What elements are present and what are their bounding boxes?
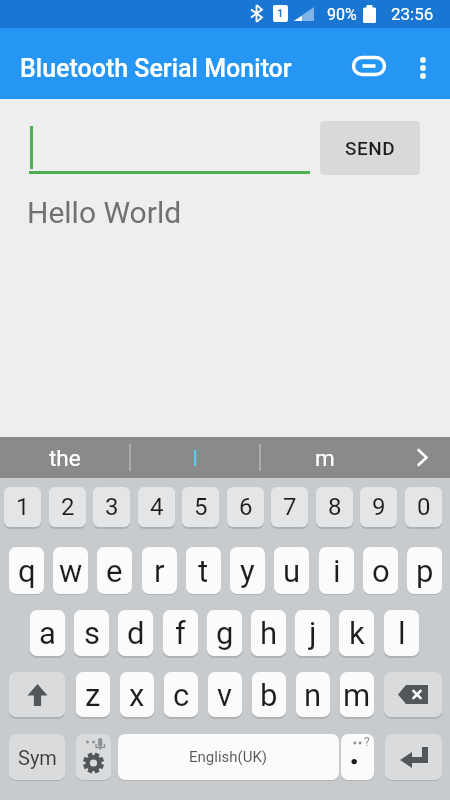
staticText: p: [416, 553, 434, 589]
staticText: English(UK): [189, 748, 268, 766]
staticText: ?: [364, 735, 370, 749]
staticText: Bluetooth Serial Monitor: [20, 54, 292, 83]
button[interactable]: f: [163, 610, 198, 656]
staticText: 9: [372, 493, 386, 521]
staticText: y: [240, 553, 255, 589]
staticText: 1: [277, 7, 284, 20]
button[interactable]: p: [407, 547, 442, 594]
button[interactable]: k: [339, 610, 374, 656]
staticText: z: [85, 677, 101, 713]
button[interactable]: 9: [360, 487, 397, 527]
staticText: f: [175, 615, 186, 651]
staticText: w: [59, 553, 83, 589]
button[interactable]: d: [118, 610, 153, 656]
button[interactable]: [384, 672, 442, 717]
button[interactable]: y: [230, 547, 265, 594]
staticText: I: [192, 445, 199, 471]
staticText: q: [18, 553, 36, 589]
staticText: Hello World: [27, 195, 182, 230]
button[interactable]: w: [53, 547, 88, 594]
button[interactable]: [9, 672, 65, 717]
button[interactable]: [76, 734, 111, 780]
staticText: 2: [61, 493, 75, 521]
staticText: m: [343, 677, 371, 713]
button[interactable]: v: [208, 672, 242, 717]
staticText: 90%: [327, 5, 357, 24]
button[interactable]: [405, 437, 440, 478]
staticText: 5: [194, 493, 208, 521]
staticText: e: [106, 553, 123, 589]
staticText: 6: [239, 493, 253, 521]
button[interactable]: u: [274, 547, 309, 594]
button[interactable]: i: [319, 547, 354, 594]
button[interactable]: z: [76, 672, 110, 717]
button[interactable]: 6: [227, 487, 264, 527]
button[interactable]: [408, 48, 438, 84]
staticText: t: [198, 553, 209, 589]
staticText: u: [283, 553, 301, 589]
staticText: the: [49, 445, 81, 471]
button[interactable]: t: [186, 547, 221, 594]
staticText: d: [127, 615, 145, 651]
button[interactable]: 7: [271, 487, 308, 527]
button[interactable]: 4: [138, 487, 175, 527]
staticText: x: [129, 677, 145, 713]
button[interactable]: [385, 734, 442, 780]
button[interactable]: o: [363, 547, 398, 594]
staticText: 4: [150, 493, 164, 521]
button[interactable]: a: [30, 610, 65, 656]
button[interactable]: SEND: [320, 121, 420, 175]
staticText: h: [260, 615, 278, 651]
staticText: 8: [328, 493, 342, 521]
button[interactable]: j: [295, 610, 330, 656]
staticText: SEND: [345, 137, 396, 159]
button[interactable]: Sym: [9, 734, 65, 780]
button[interactable]: [350, 48, 388, 84]
staticText: 7: [283, 493, 297, 521]
staticText: o: [372, 553, 390, 589]
button[interactable]: 0: [405, 487, 442, 527]
staticText: c: [173, 677, 190, 713]
staticText: l: [398, 615, 406, 651]
button[interactable]: b: [252, 672, 286, 717]
button[interactable]: q: [9, 547, 44, 594]
button[interactable]: the: [0, 437, 130, 478]
button[interactable]: I: [130, 437, 260, 478]
button[interactable]: g: [207, 610, 242, 656]
button[interactable]: e: [97, 547, 132, 594]
button[interactable]: m: [340, 672, 374, 717]
button[interactable]: 1: [4, 487, 41, 527]
staticText: v: [217, 677, 233, 713]
staticText: m: [315, 445, 335, 471]
button[interactable]: English(UK): [118, 734, 339, 780]
staticText: b: [260, 677, 278, 713]
staticText: g: [216, 615, 234, 651]
staticText: Sym: [18, 746, 57, 769]
button[interactable]: c: [164, 672, 198, 717]
staticText: 1: [16, 493, 30, 521]
staticText: 0: [417, 493, 431, 521]
staticText: n: [304, 677, 322, 713]
staticText: k: [349, 615, 365, 651]
button[interactable]: 3: [93, 487, 130, 527]
button[interactable]: s: [74, 610, 109, 656]
button[interactable]: 8: [316, 487, 353, 527]
button[interactable]: h: [251, 610, 286, 656]
button[interactable]: r: [142, 547, 177, 594]
staticText: j: [309, 615, 317, 651]
staticText: 3: [105, 493, 119, 521]
staticText: 23:56: [391, 4, 434, 24]
button[interactable]: ?: [341, 734, 374, 780]
button[interactable]: m: [260, 437, 390, 478]
button[interactable]: x: [120, 672, 154, 717]
staticText: s: [84, 615, 100, 651]
staticText: r: [154, 553, 165, 589]
button[interactable]: 2: [49, 487, 86, 527]
button[interactable]: n: [296, 672, 330, 717]
button[interactable]: 5: [182, 487, 219, 527]
staticText: i: [333, 553, 341, 589]
staticText: a: [39, 615, 56, 651]
button[interactable]: l: [384, 610, 419, 656]
